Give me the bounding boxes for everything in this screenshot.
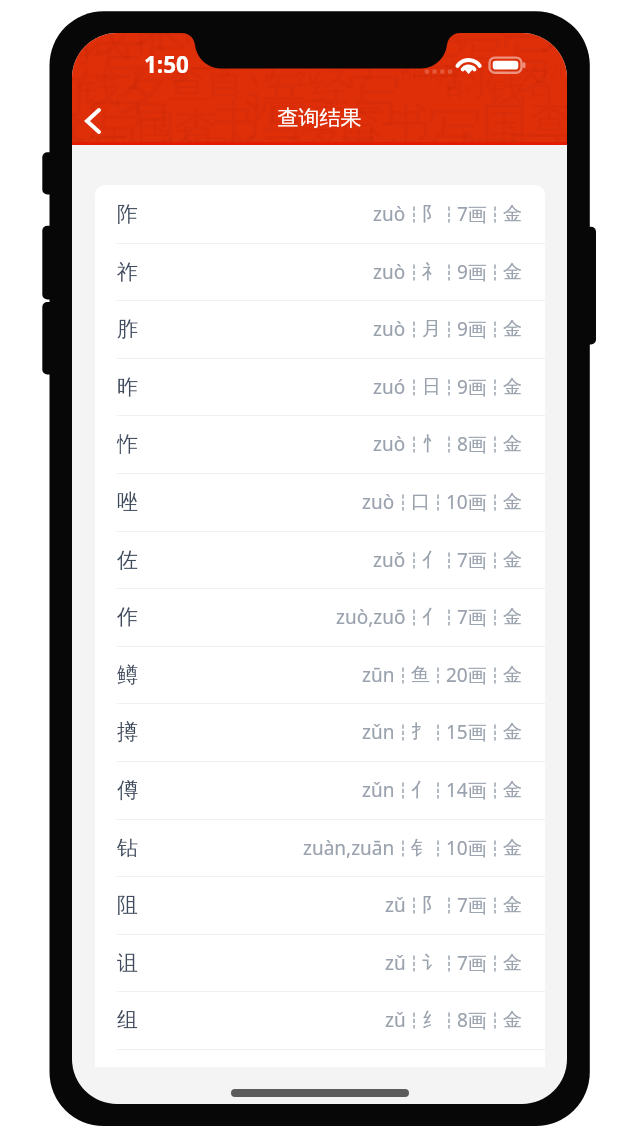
button[interactable]: 祚 [95,243,545,301]
staticText: 7画 [457,950,487,976]
staticText: 鱼 [411,663,430,687]
staticText: 金 [503,490,522,514]
staticText: 金 [503,836,522,860]
staticText: 8画 [457,1007,487,1033]
button[interactable]: 鳟 [95,646,545,704]
button[interactable]: 阼 [95,185,545,243]
staticText: 鳟 [117,662,138,688]
staticText: 纟 [422,1008,441,1032]
staticText: 金 [503,260,522,284]
staticText: 金 [503,778,522,802]
button[interactable]: Back [72,94,117,147]
staticText: zuò,zuō [336,604,406,630]
staticText: 7画 [457,547,487,573]
staticText: 查询结果 [72,105,567,131]
staticText: 9画 [457,316,487,342]
staticText: zuó [373,374,406,400]
staticText: 阻 [117,892,138,918]
staticText: 金 [503,951,522,975]
staticText: 口 [411,490,430,514]
staticText: 金 [503,548,522,572]
staticText: 作 [117,604,138,630]
button[interactable]: 胙 [95,300,545,358]
button[interactable]: 僔 [95,761,545,819]
staticText: 讠 [422,951,441,975]
staticText: 阼 [117,201,138,227]
staticText: 佐 [117,547,138,573]
staticText: 唑 [117,489,138,515]
staticText: zuò [373,316,406,342]
staticText: 金 [503,605,522,629]
staticText: 亻 [422,548,441,572]
button[interactable]: 佐 [95,531,545,589]
staticText: 7画 [457,604,487,630]
staticText: 月 [422,317,441,341]
staticText: 祚 [117,259,138,285]
staticText: 金 [503,375,522,399]
button[interactable]: 作 [95,588,545,646]
button[interactable]: 唑 [95,473,545,531]
staticText: 金 [503,1008,522,1032]
staticText: 金 [503,317,522,341]
staticText: 钅 [411,836,430,860]
staticText: zǔ [385,950,406,976]
staticText: 日 [422,375,441,399]
staticText: 胙 [117,316,138,342]
button[interactable]: 诅 [95,934,545,992]
staticText: 1:50 [144,49,189,80]
button[interactable]: 钻 [95,819,545,877]
staticText: 组 [117,1007,138,1033]
staticText: zǔ [385,1007,406,1033]
staticText: 10画 [446,835,487,861]
staticText: 昨 [117,374,138,400]
staticText: 礻 [422,260,441,284]
staticText: zǔn [362,777,395,803]
staticText: 7画 [457,892,487,918]
staticText: zǔ [385,892,406,918]
button[interactable]: 组 [95,991,545,1049]
staticText: 钻 [117,835,138,861]
staticText: zuò [373,259,406,285]
staticText: zǔn [362,719,395,745]
staticText: 诅 [117,950,138,976]
button[interactable]: 撙 [95,703,545,761]
staticText: 9画 [457,259,487,285]
button[interactable]: 怍 [95,415,545,473]
staticText: 金 [503,893,522,917]
staticText: 金 [503,202,522,226]
button[interactable]: 昨 [95,358,545,416]
staticText: 8画 [457,431,487,457]
staticText: 15画 [446,719,487,745]
staticText: 怍 [117,431,138,457]
staticText: 金 [503,432,522,456]
staticText: 阝 [422,202,441,226]
staticText: 忄 [422,432,441,456]
staticText: 金 [503,720,522,744]
staticText: 僔 [117,777,138,803]
staticText: 9画 [457,374,487,400]
staticText: 7画 [457,201,487,227]
staticText: zuò [362,489,395,515]
staticText: zuò [373,201,406,227]
staticText: 14画 [446,777,487,803]
staticText: 金 [503,663,522,687]
staticText: zuàn,zuān [303,835,395,861]
staticText: 阝 [422,893,441,917]
staticText: 扌 [411,720,430,744]
staticText: 亻 [411,778,430,802]
staticText: 20画 [446,662,487,688]
staticText: 亻 [422,605,441,629]
staticText: zūn [362,662,395,688]
staticText: 撙 [117,719,138,745]
staticText: zuò [373,431,406,457]
staticText: zuǒ [373,547,406,573]
staticText: 10画 [446,489,487,515]
button[interactable]: 阻 [95,876,545,934]
